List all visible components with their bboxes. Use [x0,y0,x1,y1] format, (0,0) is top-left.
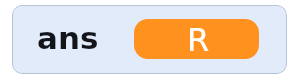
staticText: ans [37,20,99,56]
button[interactable]: R [134,19,259,59]
staticText: R [187,21,210,58]
